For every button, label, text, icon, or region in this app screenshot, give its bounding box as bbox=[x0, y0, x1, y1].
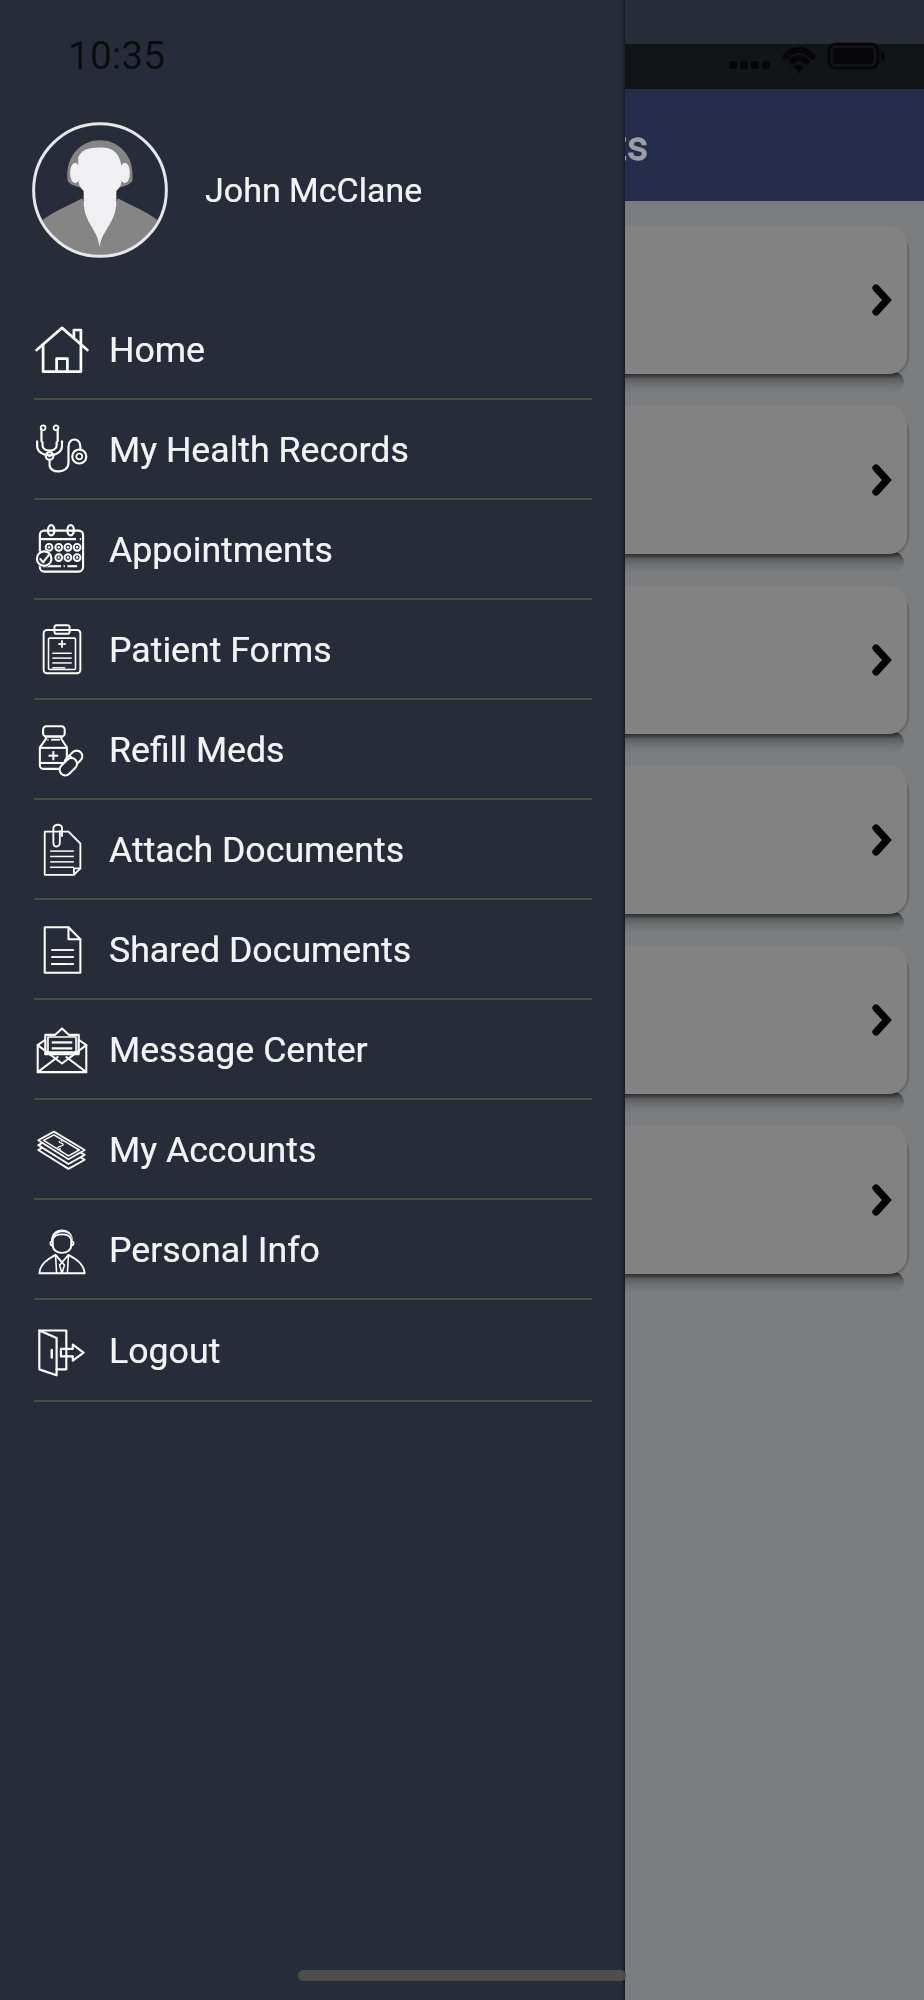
button[interactable]: John McClane bbox=[0, 122, 625, 258]
button[interactable]: Appointments bbox=[0, 500, 625, 600]
staticText: 10:35 bbox=[68, 33, 166, 79]
staticText: Patient Forms bbox=[109, 629, 332, 671]
button[interactable]: Home bbox=[0, 300, 625, 400]
staticText: My Accounts bbox=[109, 1129, 317, 1171]
staticText: Shared Documents bbox=[109, 929, 412, 971]
other: Open bbox=[868, 820, 908, 860]
button[interactable]: Message Center bbox=[0, 1000, 625, 1100]
other: Open bbox=[868, 1180, 908, 1220]
button[interactable]: Attach Documents bbox=[0, 800, 625, 900]
button[interactable]: Open bbox=[0, 946, 924, 1094]
button[interactable]: Refill Meds bbox=[0, 700, 625, 800]
other: Open bbox=[868, 280, 908, 320]
staticText: My Health Records bbox=[109, 429, 409, 471]
button[interactable]: Logout bbox=[0, 1300, 625, 1402]
other: Open bbox=[868, 460, 908, 500]
staticText: Home bbox=[109, 329, 206, 371]
button[interactable]: Open bbox=[0, 406, 924, 554]
staticText: Logout bbox=[109, 1330, 221, 1372]
other: Open bbox=[868, 1000, 908, 1040]
staticText: John McClane bbox=[205, 170, 423, 210]
staticText: Attach Documents bbox=[109, 829, 405, 871]
button[interactable]: Patient Forms bbox=[0, 600, 625, 700]
button[interactable]: My Accounts bbox=[0, 1100, 625, 1200]
button[interactable]: Open bbox=[0, 226, 924, 374]
button[interactable]: Personal Info bbox=[0, 1200, 625, 1300]
other: Open bbox=[868, 640, 908, 680]
staticText: Message Center bbox=[109, 1029, 368, 1071]
staticText: Appointments bbox=[109, 529, 333, 571]
button[interactable]: Open bbox=[0, 1126, 924, 1274]
button[interactable]: Shared Documents bbox=[0, 900, 625, 1000]
staticText: Personal Info bbox=[109, 1229, 320, 1271]
button[interactable]: Open bbox=[0, 766, 924, 914]
button[interactable]: Open bbox=[0, 586, 924, 734]
button[interactable]: My Health Records bbox=[0, 400, 625, 500]
staticText: Refill Meds bbox=[109, 729, 285, 771]
staticText: Appointments bbox=[391, 122, 649, 170]
